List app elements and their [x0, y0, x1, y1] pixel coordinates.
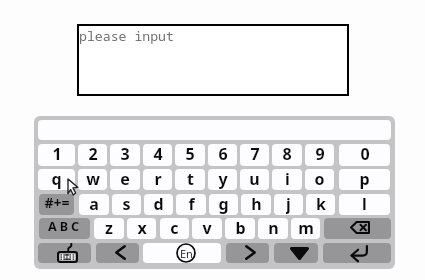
button[interactable]: 9: [305, 144, 334, 166]
button[interactable]: x: [127, 218, 156, 239]
button[interactable]: e: [110, 169, 140, 190]
button[interactable]: k: [306, 194, 335, 215]
staticText: 0: [360, 144, 370, 165]
staticText: 2: [88, 144, 98, 165]
staticText: f: [188, 194, 195, 214]
button[interactable]: z: [94, 218, 124, 239]
staticText: En: [180, 246, 193, 261]
button[interactable]: p: [339, 169, 390, 190]
staticText: v: [202, 218, 212, 238]
button[interactable]: o: [305, 169, 334, 190]
staticText: t: [187, 169, 194, 189]
button[interactable]: b: [225, 218, 255, 239]
button[interactable]: a: [79, 194, 109, 215]
button[interactable]: w: [78, 169, 107, 190]
button[interactable]: i: [272, 169, 302, 190]
staticText: k: [316, 194, 326, 214]
button[interactable]: Enter: [323, 243, 391, 263]
button[interactable]: v: [192, 218, 222, 239]
button[interactable]: u: [240, 169, 269, 190]
staticText: e: [120, 169, 130, 189]
staticText: o: [314, 169, 325, 189]
button[interactable]: 8: [272, 144, 302, 166]
button[interactable]: 2: [78, 144, 107, 166]
button[interactable]: Backspace: [324, 218, 391, 239]
button[interactable]: #+=: [39, 194, 74, 215]
staticText: 5: [185, 144, 195, 165]
staticText: z: [105, 218, 113, 238]
button[interactable]: y: [208, 169, 237, 190]
button[interactable]: s: [112, 194, 141, 215]
button[interactable]: 3: [110, 144, 140, 166]
staticText: p: [359, 169, 370, 189]
button[interactable]: l: [339, 194, 390, 215]
button[interactable]: 0: [339, 144, 390, 166]
staticText: please input: [79, 27, 174, 45]
button[interactable]: f: [176, 194, 206, 215]
button[interactable]: Next: [226, 243, 269, 263]
staticText: u: [249, 169, 260, 189]
button[interactable]: 6: [208, 144, 237, 166]
staticText: w: [86, 169, 100, 189]
staticText: 3: [120, 144, 130, 165]
staticText: 8: [282, 144, 292, 165]
staticText: #+=: [44, 194, 70, 212]
staticText: b: [235, 218, 246, 238]
button[interactable]: Hide keyboard: [274, 243, 318, 263]
button[interactable]: d: [144, 194, 173, 215]
button[interactable]: t: [175, 169, 205, 190]
button[interactable]: 4: [143, 144, 172, 166]
button[interactable]: 7: [240, 144, 269, 166]
staticText: g: [218, 194, 229, 214]
staticText: n: [268, 218, 279, 238]
button[interactable]: q: [38, 169, 75, 190]
staticText: c: [170, 218, 179, 238]
staticText: 7: [250, 144, 260, 165]
staticText: i: [285, 169, 290, 189]
staticText: 9: [315, 144, 325, 165]
button[interactable]: Language: [143, 243, 221, 263]
staticText: d: [153, 194, 164, 214]
button[interactable]: g: [209, 194, 238, 215]
button[interactable]: 5: [175, 144, 205, 166]
staticText: 4: [153, 144, 163, 165]
staticText: h: [251, 194, 262, 214]
button[interactable]: Switch keyboard: [38, 243, 91, 263]
button[interactable]: ABC: [39, 218, 90, 239]
button[interactable]: Previous: [96, 243, 139, 263]
button[interactable]: c: [160, 218, 189, 239]
staticText: y: [218, 169, 228, 189]
staticText: l: [362, 194, 367, 214]
button[interactable]: n: [258, 218, 288, 239]
staticText: j: [286, 194, 291, 214]
button[interactable]: m: [291, 218, 320, 239]
button[interactable]: j: [274, 194, 303, 215]
staticText: m: [298, 218, 314, 238]
staticText: ABC: [48, 218, 82, 235]
button[interactable]: h: [241, 194, 271, 215]
staticText: 1: [52, 144, 62, 165]
staticText: q: [51, 169, 62, 189]
staticText: s: [122, 194, 131, 214]
staticText: x: [137, 218, 147, 238]
staticText: a: [89, 194, 99, 214]
button[interactable]: 1: [38, 144, 75, 166]
staticText: 6: [218, 144, 228, 165]
staticText: r: [154, 169, 162, 189]
button[interactable]: r: [143, 169, 172, 190]
